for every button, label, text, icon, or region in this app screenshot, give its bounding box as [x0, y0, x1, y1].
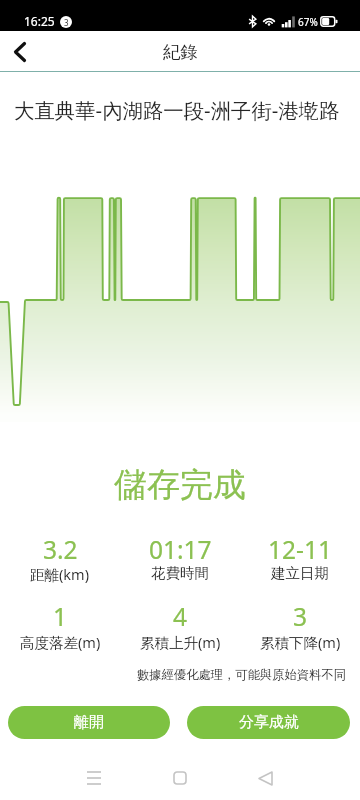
staticText: 高度落差(m) [20, 632, 101, 652]
staticText: 累積上升(m) [140, 632, 221, 652]
button[interactable]: 分享成就 [187, 706, 350, 739]
button[interactable]: 離開 [8, 706, 170, 739]
button[interactable]: Back [243, 756, 287, 800]
button[interactable]: Back [0, 31, 40, 72]
staticText: 12-11 [268, 533, 332, 566]
staticText: 花費時間 [151, 564, 209, 582]
staticText: 01:17 [149, 533, 212, 566]
staticText: 建立日期 [271, 564, 329, 582]
staticText: 分享成就 [239, 713, 299, 732]
staticText: 3.2 [43, 533, 78, 566]
button[interactable]: Home [158, 756, 202, 800]
staticText: 數據經優化處理，可能與原始資料不同 [0, 667, 346, 682]
staticText: 16:25 [24, 13, 55, 29]
staticText: 3 [64, 17, 69, 28]
staticText: 4 [173, 600, 188, 633]
staticText: 儲存完成 [0, 464, 360, 506]
staticText: 3 [293, 600, 308, 633]
button[interactable]: Recent apps [72, 756, 116, 800]
staticText: 距離(km) [30, 564, 90, 584]
staticText: 累積下降(m) [260, 632, 341, 652]
staticText: 大直典華-內湖路一段-洲子街-港墘路 [14, 96, 340, 124]
staticText: 紀錄 [163, 41, 198, 63]
staticText: 67% [298, 15, 318, 29]
staticText: 1 [53, 600, 68, 633]
staticText: 離開 [74, 713, 104, 732]
